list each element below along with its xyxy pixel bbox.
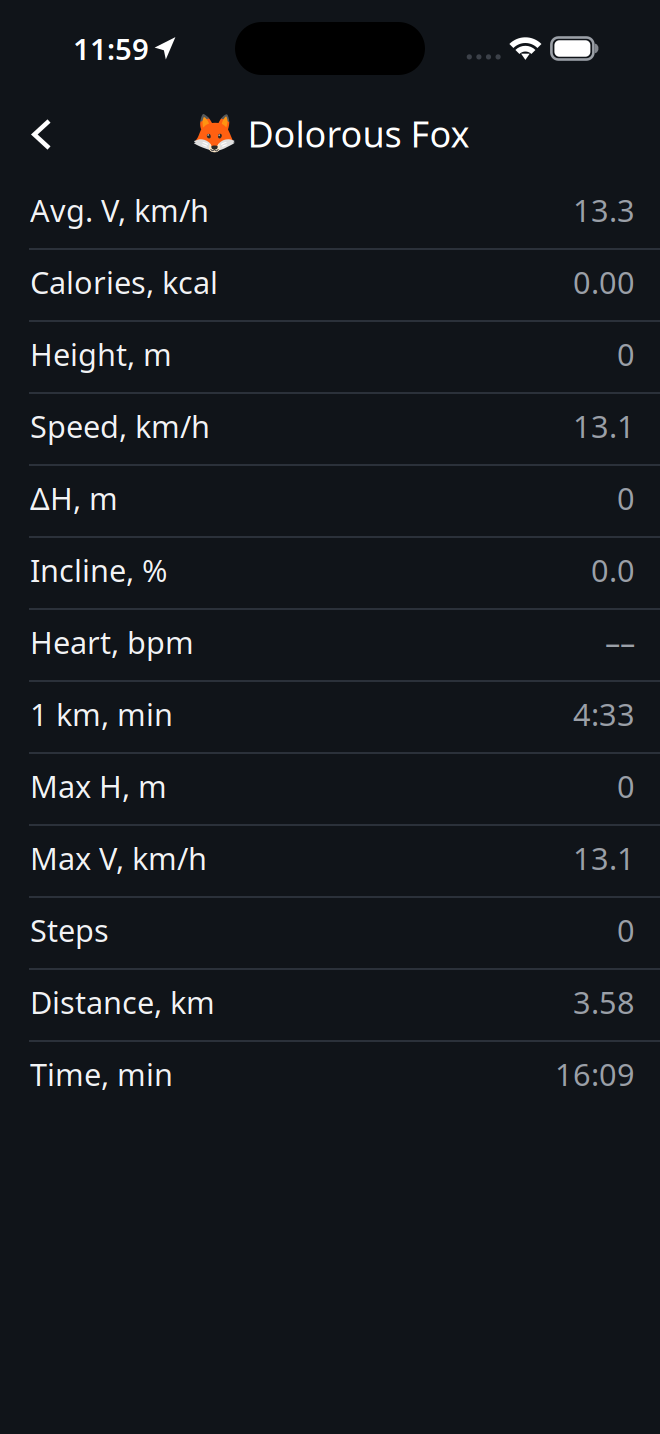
- staticText: ––: [605, 622, 635, 662]
- staticText: 0: [617, 910, 635, 950]
- staticText: Incline, %: [30, 550, 167, 590]
- staticText: Height, m: [30, 334, 172, 374]
- staticText: 11:59: [73, 29, 149, 68]
- staticText: Dolorous Fox: [247, 110, 469, 157]
- staticText: 1 km, min: [30, 694, 173, 734]
- staticText: 0.00: [573, 262, 635, 302]
- staticText: ΔH, m: [30, 478, 118, 518]
- staticText: 13.1: [573, 838, 635, 878]
- staticText: 4:33: [573, 694, 635, 734]
- staticText: Distance, km: [30, 982, 215, 1022]
- staticText: 0.0: [591, 550, 635, 590]
- staticText: Calories, kcal: [30, 262, 218, 302]
- staticText: Speed, km/h: [30, 406, 210, 446]
- staticText: 13.3: [573, 190, 635, 230]
- staticText: Max V, km/h: [30, 838, 207, 878]
- staticText: Time, min: [30, 1054, 173, 1094]
- button[interactable]: Back: [0, 97, 72, 178]
- staticText: 0: [617, 766, 635, 806]
- staticText: Avg. V, km/h: [30, 190, 209, 230]
- staticText: Heart, bpm: [30, 622, 194, 662]
- staticText: 3.58: [573, 982, 635, 1022]
- staticText: 13.1: [573, 406, 635, 446]
- staticText: Steps: [30, 910, 109, 950]
- staticText: 🦊: [190, 112, 236, 155]
- staticText: 16:09: [555, 1054, 635, 1094]
- staticText: Max H, m: [30, 766, 167, 806]
- staticText: 0: [617, 334, 635, 374]
- staticText: 0: [617, 478, 635, 518]
